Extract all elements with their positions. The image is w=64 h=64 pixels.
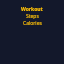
- staticText: Steps: [26, 13, 39, 20]
- staticText: Calories: [23, 20, 42, 27]
- staticText: Workout: [21, 6, 43, 13]
